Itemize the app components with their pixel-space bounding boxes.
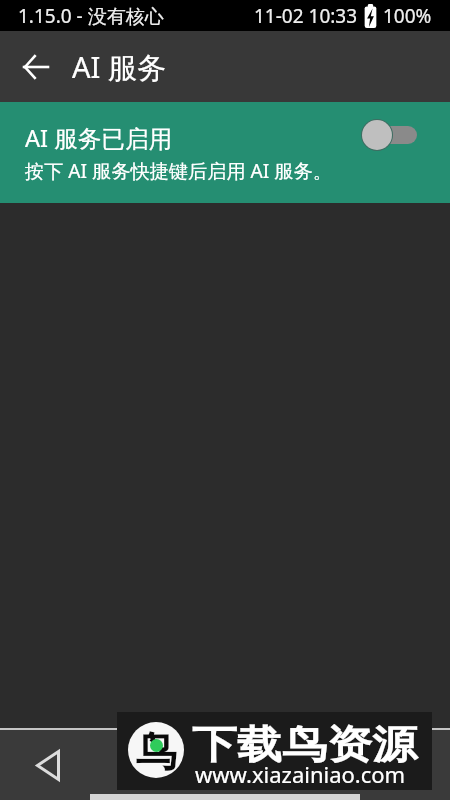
staticText: 100% bbox=[383, 3, 432, 29]
button[interactable]: Back bbox=[25, 742, 71, 788]
staticText: AI 服务已启用 bbox=[25, 122, 173, 154]
button[interactable]: Back bbox=[12, 43, 60, 91]
staticText: AI 服务 bbox=[72, 47, 166, 87]
staticText: 1.15.0 - 没有核心 bbox=[18, 3, 164, 29]
staticText: www.xiazainiao.com bbox=[195, 759, 406, 789]
staticText: 下载鸟资源 bbox=[192, 720, 417, 770]
staticText: 鸟 bbox=[136, 727, 177, 771]
staticText: 11-02 10:33 bbox=[254, 3, 358, 29]
button[interactable]: AI 服务已启用 bbox=[0, 102, 450, 203]
button[interactable]: Toggle AI service bbox=[359, 117, 417, 153]
staticText: 按下 AI 服务快捷键后启用 AI 服务。 bbox=[25, 157, 332, 183]
